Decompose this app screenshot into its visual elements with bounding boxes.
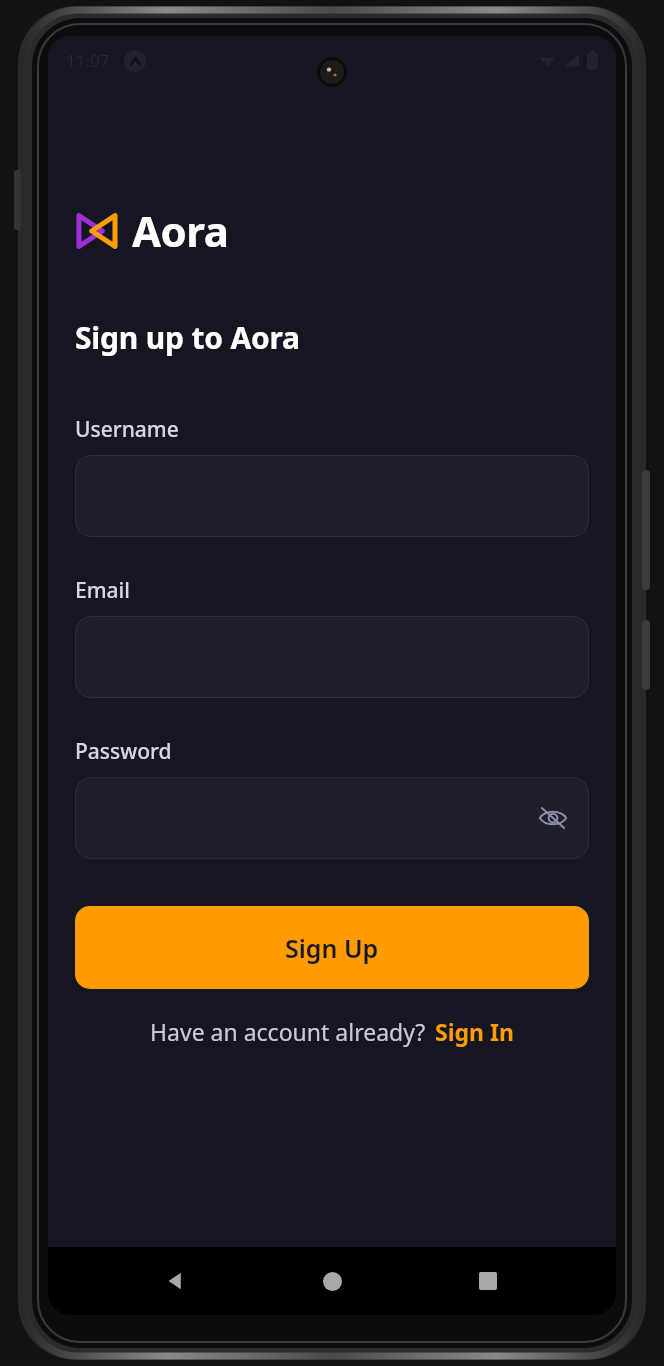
button[interactable]: Back bbox=[148, 1253, 204, 1309]
button[interactable]: Sign Up bbox=[75, 906, 589, 989]
button[interactable]: Sign In bbox=[435, 1016, 514, 1047]
staticText: Username bbox=[75, 415, 179, 444]
staticText: Password bbox=[75, 737, 172, 766]
staticText: Sign up to Aora bbox=[75, 317, 300, 358]
staticText: Aora bbox=[132, 202, 229, 259]
staticText: Have an account already? bbox=[150, 1016, 426, 1047]
button[interactable]: Show password bbox=[535, 800, 571, 836]
button[interactable]: Recent apps bbox=[460, 1253, 516, 1309]
button[interactable]: Show password bbox=[75, 777, 589, 859]
staticText: Sign In bbox=[435, 1016, 514, 1047]
staticText: Sign Up bbox=[285, 931, 379, 965]
staticText: 11:07 bbox=[66, 49, 110, 72]
button[interactable]: Home bbox=[304, 1253, 360, 1309]
staticText: Email bbox=[75, 576, 130, 605]
